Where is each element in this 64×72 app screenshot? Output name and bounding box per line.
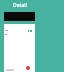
- button[interactable]: Add: [26, 66, 30, 70]
- button[interactable]: Detail: [0, 0, 64, 12]
- staticText: Detail: [13, 2, 28, 9]
